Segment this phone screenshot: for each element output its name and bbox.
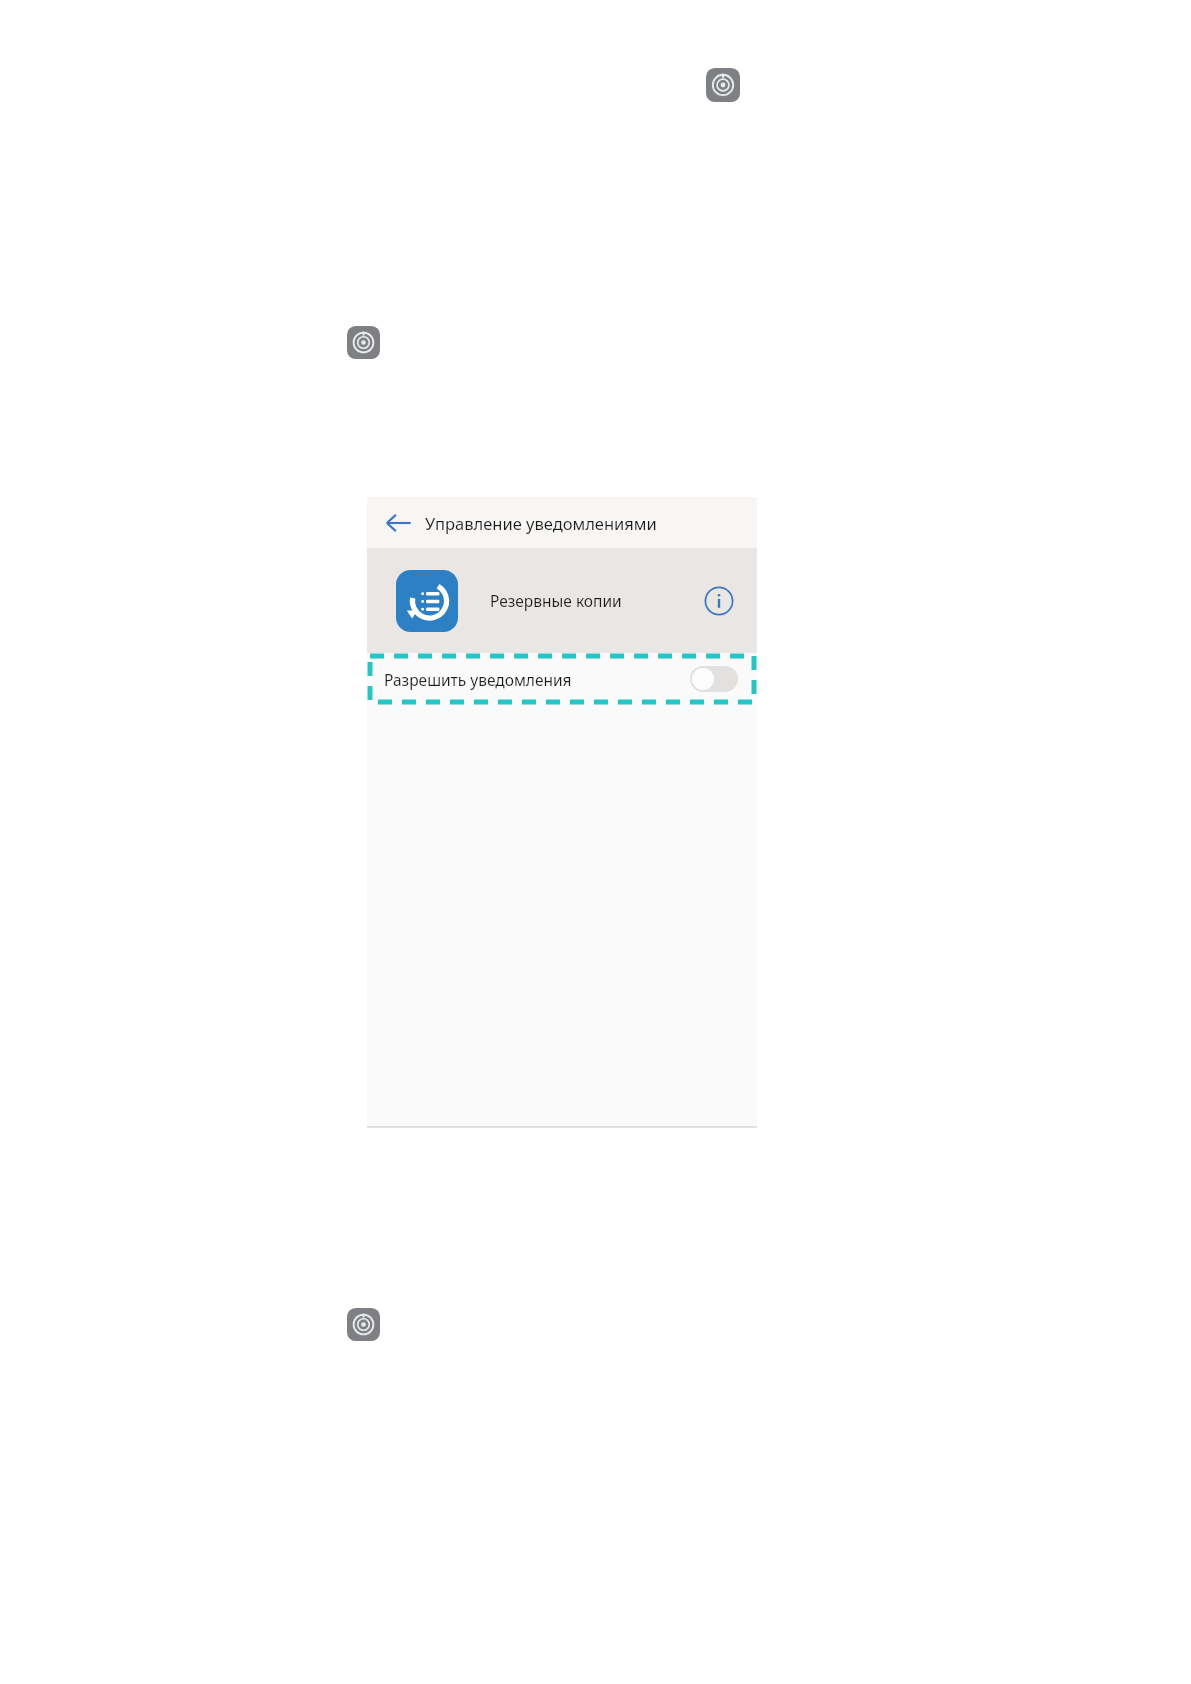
staticText: Разрешить уведомления <box>384 669 572 690</box>
button[interactable]: Разрешить уведомления <box>367 653 757 705</box>
button[interactable]: Back <box>383 508 413 538</box>
button[interactable]: Info <box>702 584 736 618</box>
button[interactable]: Резервные копии <box>367 548 757 653</box>
staticText: Управление уведомлениями <box>425 512 657 534</box>
staticText: Резервные копии <box>490 590 622 611</box>
